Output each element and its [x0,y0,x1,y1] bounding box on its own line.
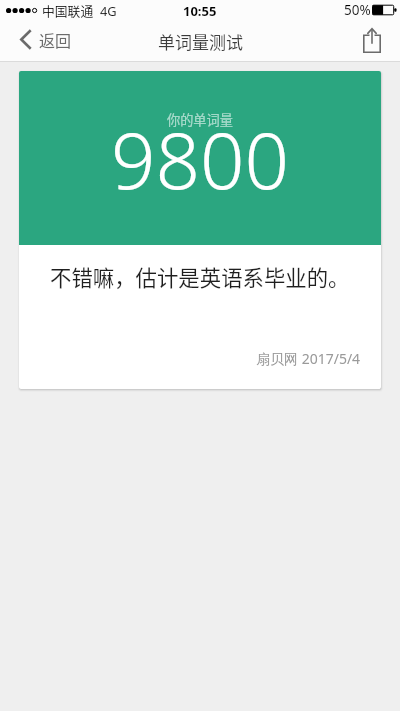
staticText: 不错嘛，估计是英语系毕业的。 [50,261,350,292]
staticText: 9800 [111,106,290,212]
staticText: 10:55 [183,2,217,20]
staticText: 50% [344,1,371,19]
button[interactable]: 返回 [0,24,84,59]
staticText: 你的单词量 [167,110,233,129]
staticText: 返回 [39,28,72,51]
staticText: 单词量测试 [158,29,243,54]
button[interactable]: Share [349,25,400,58]
staticText: 扇贝网 2017/5/4 [256,349,361,368]
staticText: 4G [100,2,117,19]
staticText: 中国联通 [42,1,94,20]
